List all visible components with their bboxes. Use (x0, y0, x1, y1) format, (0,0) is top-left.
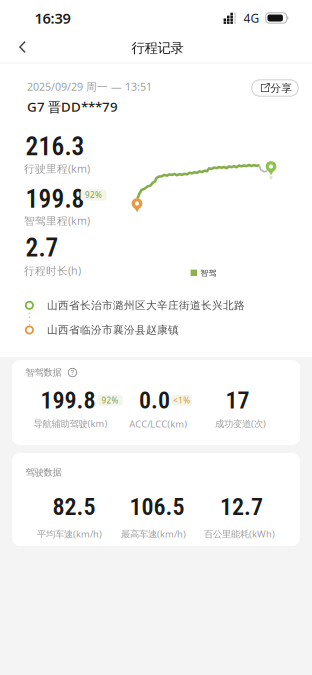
staticText: ? (71, 368, 74, 377)
staticText: 92% (101, 395, 118, 406)
staticText: 智驾数据 (25, 367, 61, 378)
staticText: <1% (173, 395, 190, 406)
staticText: 199.8 (25, 184, 84, 214)
staticText: 百公里能耗(kWh) (204, 528, 275, 540)
staticText: 199.8 (40, 386, 95, 414)
staticText: 行程记录 (131, 40, 183, 56)
button[interactable]: 智驾数据说明 (66, 366, 78, 378)
button[interactable]: 分享 (252, 80, 298, 96)
staticText: 216.3 (25, 132, 84, 161)
staticText: 智驾 (200, 268, 216, 278)
staticText: 92% (85, 190, 102, 200)
staticText: 12.7 (220, 493, 263, 521)
staticText: 分享 (270, 82, 292, 95)
staticText: 行程时长(h) (24, 263, 81, 277)
staticText: 106.5 (129, 493, 184, 521)
staticText: 山西省临汾市襄汾县赵康镇 (47, 323, 179, 336)
staticText: 导航辅助驾驶(km) (34, 417, 108, 430)
staticText: ACC/LCC(km) (129, 418, 187, 430)
staticText: 0.0 (139, 386, 170, 414)
staticText: 成功变道(次) (215, 417, 266, 430)
button[interactable]: Back (5, 30, 39, 64)
staticText: 4G (243, 10, 259, 26)
staticText: G7 晋DD***79 (27, 98, 118, 115)
staticText: 平均车速(km/h) (37, 528, 102, 540)
staticText: 17 (225, 386, 249, 414)
staticText: 16:39 (34, 8, 70, 28)
staticText: 山西省长治市潞州区大辛庄街道长兴北路 (47, 299, 245, 312)
staticText: 2025/09/29 周一 — 13:51 (27, 79, 152, 94)
staticText: 82.5 (52, 493, 95, 521)
staticText: 行驶里程(km) (24, 161, 90, 176)
staticText: 2.7 (25, 233, 58, 263)
staticText: 驾驶数据 (25, 467, 61, 478)
staticText: 最高车速(km/h) (121, 528, 186, 540)
staticText: 智驾里程(km) (24, 213, 90, 228)
